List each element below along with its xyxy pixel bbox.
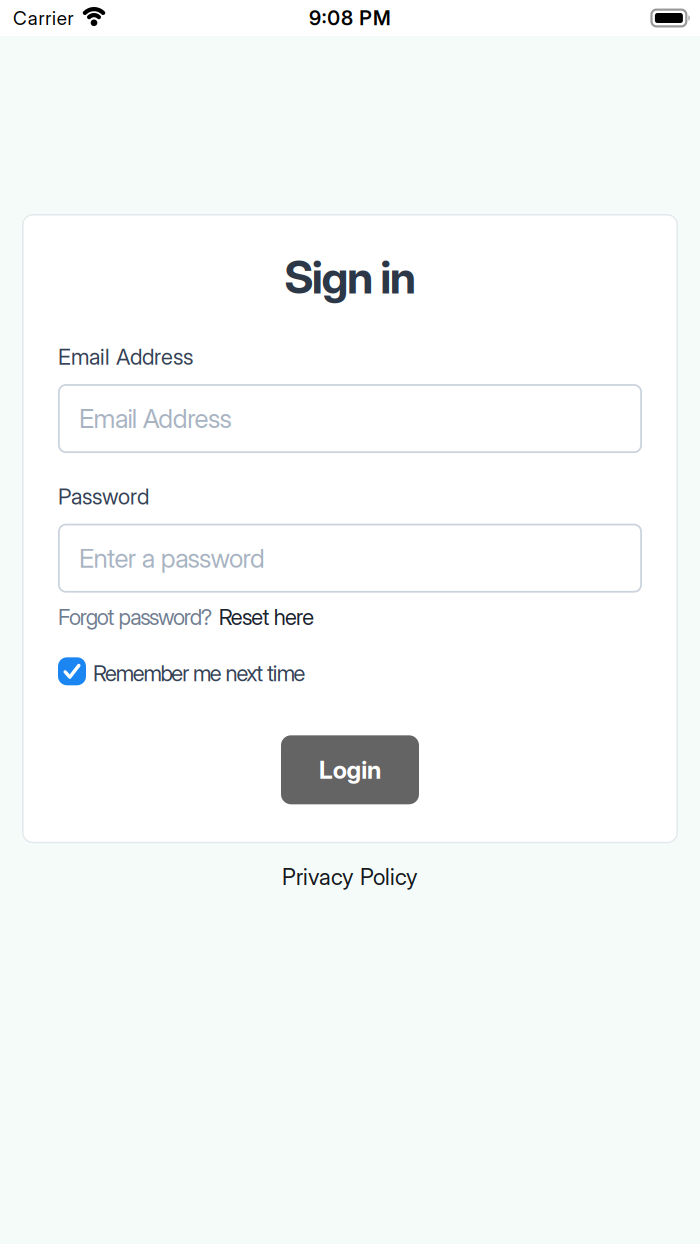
button[interactable]: Login [281,735,419,804]
staticText: Enter a password [79,542,265,574]
button[interactable]: Privacy Policy [282,863,418,890]
staticText: Carrier [13,6,73,29]
staticText: Remember me next time [93,660,305,687]
staticText: Password [58,483,149,510]
staticText: 9:08 PM [309,6,391,30]
staticText: Forgot password? [58,604,213,630]
staticText: Reset here [219,604,314,630]
button[interactable]: Reset here [219,604,314,630]
staticText: Login [319,755,381,785]
staticText: Email Address [79,403,231,434]
staticText: Email Address [58,343,193,370]
button[interactable]: Enter a password [58,524,642,593]
staticText: Privacy Policy [282,863,418,890]
button[interactable]: Remember me next time [58,657,305,685]
button[interactable]: Email Address [58,384,642,453]
staticText: Sign in [284,250,416,304]
